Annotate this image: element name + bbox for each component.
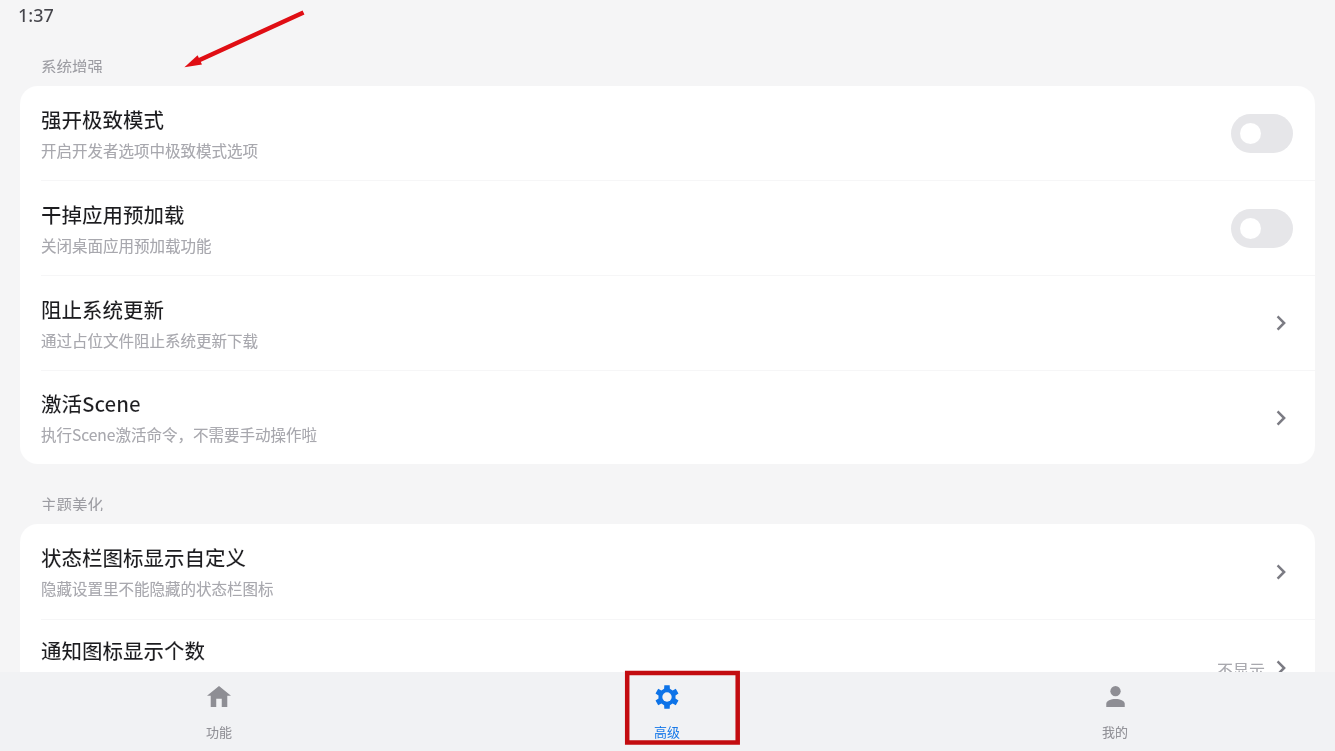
other: Open: [1269, 656, 1293, 680]
staticText: 激活Scene: [41, 388, 141, 418]
staticText: 开启开发者选项中极致模式选项: [41, 139, 259, 161]
button[interactable]: Toggle switch, off: [1231, 209, 1293, 248]
staticText: 隐藏设置里不能隐藏的状态栏图标: [41, 577, 274, 599]
other: Open: [1269, 560, 1293, 584]
staticText: 高级: [654, 722, 681, 741]
staticText: 状态栏图标显示自定义: [41, 542, 246, 572]
button[interactable]: 阻止系统更新: [20, 276, 1315, 370]
staticText: 干掉应用预加载: [41, 199, 185, 229]
staticText: 系统增强: [41, 55, 104, 73]
staticText: 1:37: [18, 3, 54, 28]
button[interactable]: 我的: [1040, 672, 1190, 751]
staticText: 执行Scene激活命令，不需要手动操作啦: [41, 423, 317, 445]
staticText: 关闭桌面应用预加载功能: [41, 234, 212, 256]
button[interactable]: 通知图标显示个数: [20, 620, 1315, 715]
button[interactable]: 状态栏图标显示自定义: [20, 524, 1315, 619]
staticText: 主题美化: [41, 493, 104, 511]
button[interactable]: Toggle switch, off: [1231, 114, 1293, 153]
button[interactable]: 强开极致模式: [20, 86, 1315, 180]
button[interactable]: 高级: [592, 672, 742, 751]
other: Open: [1269, 311, 1293, 335]
staticText: 阻止系统更新: [41, 294, 164, 324]
staticText: 功能: [206, 722, 233, 741]
staticText: [41, 670, 45, 692]
staticText: 通知图标显示个数: [41, 635, 205, 665]
staticText: 通过占位文件阻止系统更新下载: [41, 329, 259, 351]
staticText: 强开极致模式: [41, 104, 164, 134]
staticText: 我的: [1102, 722, 1129, 741]
button[interactable]: 功能: [144, 672, 294, 751]
button[interactable]: 干掉应用预加载: [20, 181, 1315, 275]
button[interactable]: 激活Scene: [20, 371, 1315, 464]
other: Open: [1269, 406, 1293, 430]
staticText: 不显示: [1217, 657, 1266, 680]
